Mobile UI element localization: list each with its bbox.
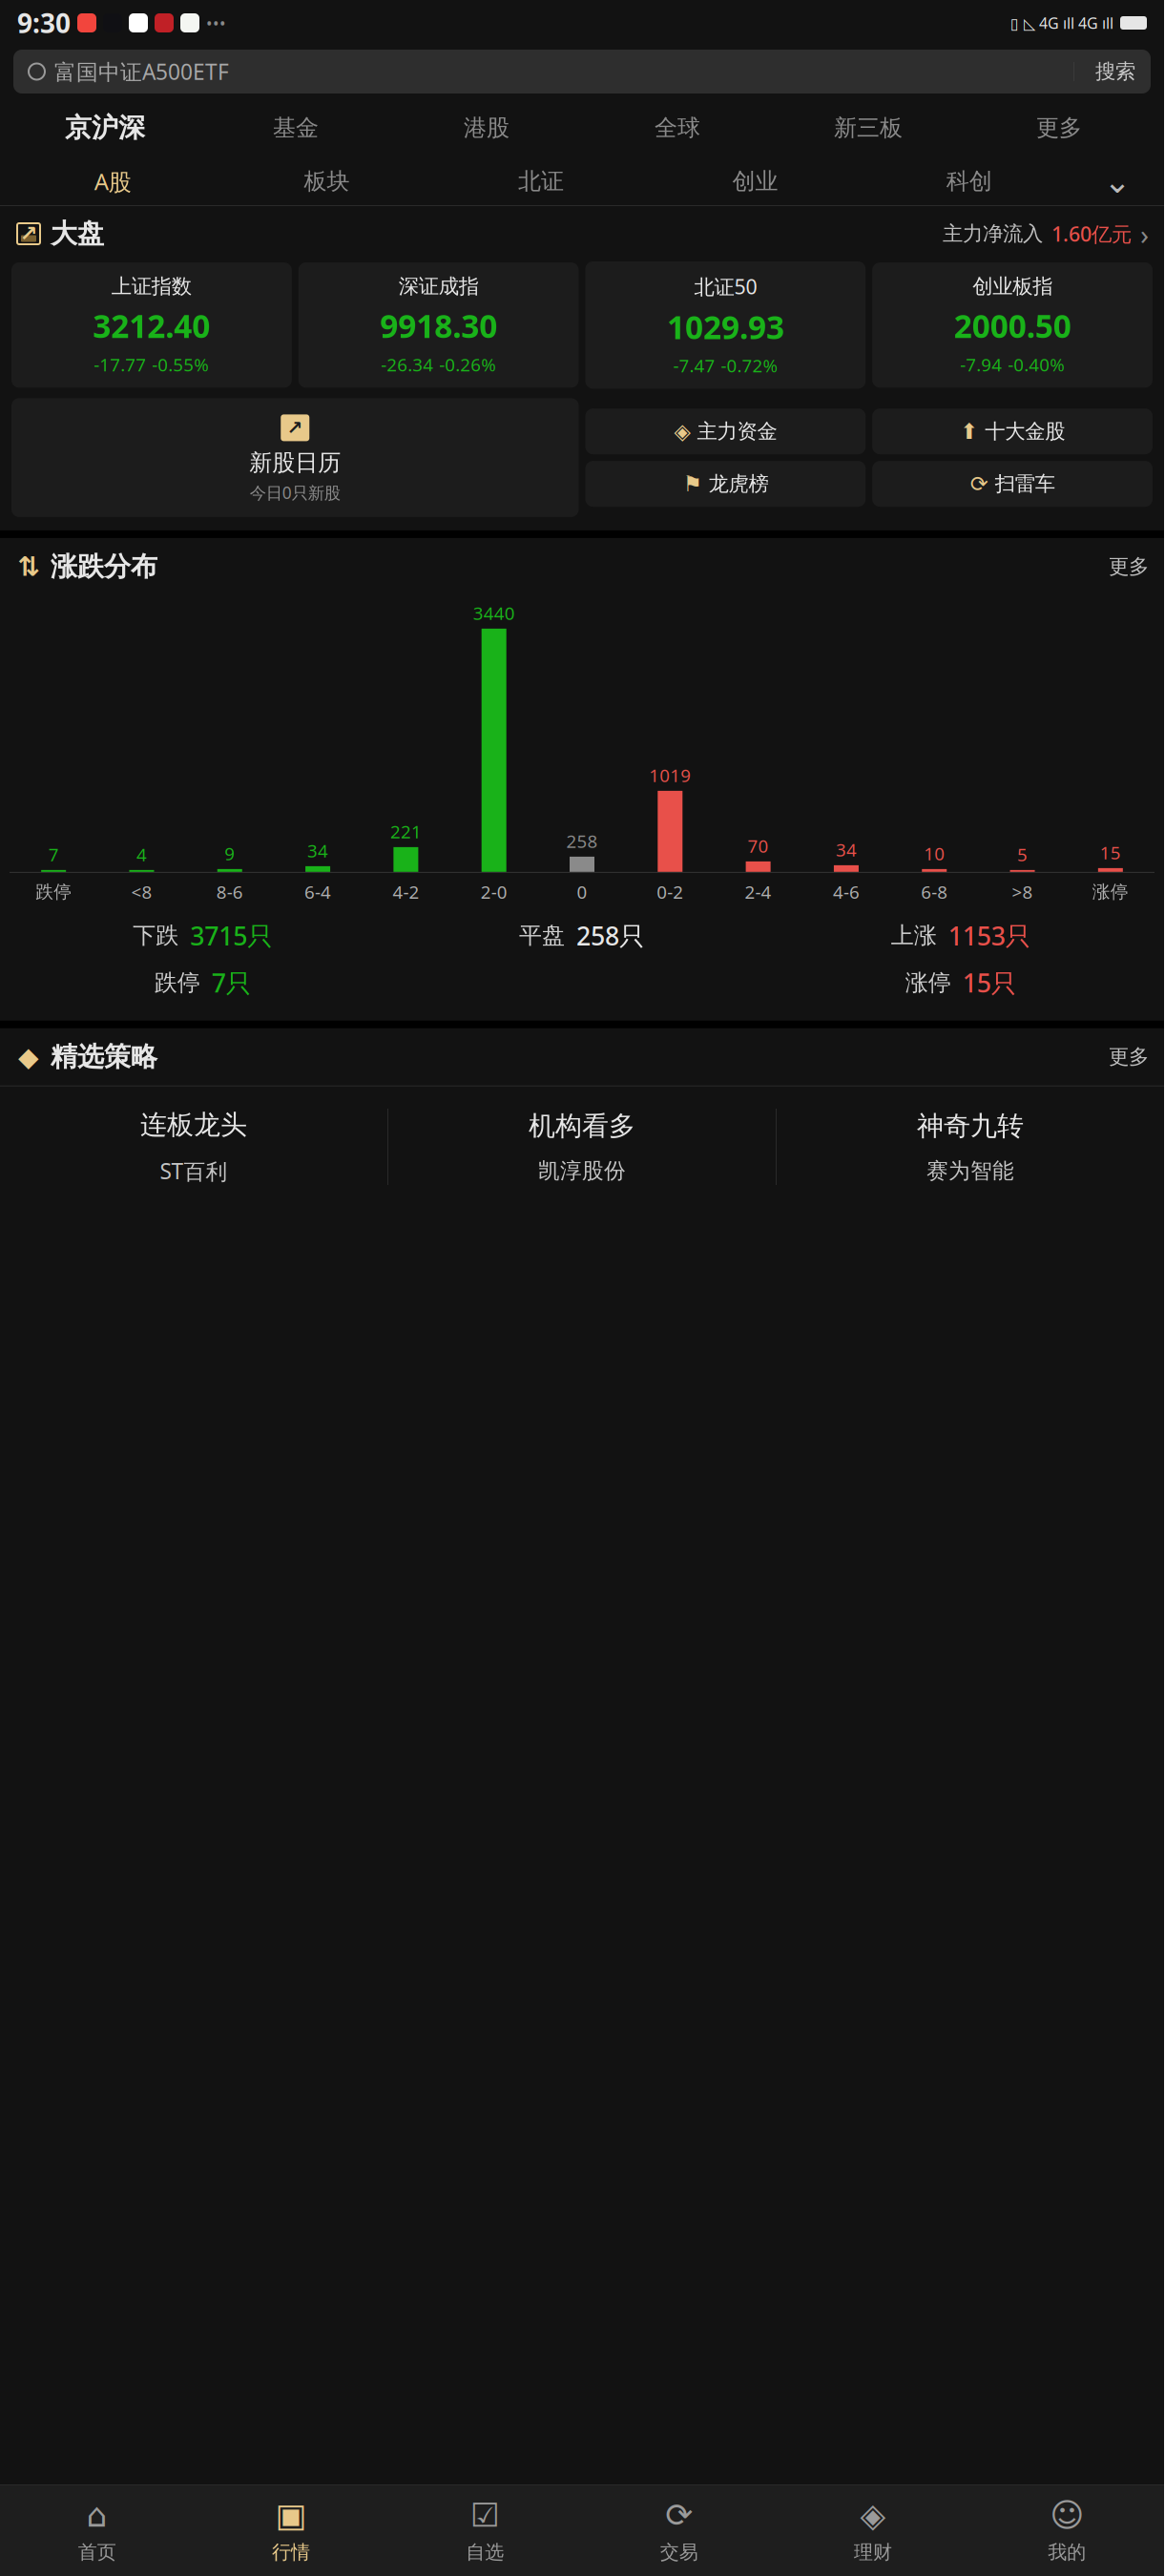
staticText: 大盘 (51, 217, 104, 250)
staticText: 4-6 (833, 880, 860, 904)
button[interactable]: 更多 (964, 107, 1155, 149)
button[interactable]: ☑ (388, 2484, 582, 2576)
staticText: 行情 (272, 2541, 310, 2564)
staticText: 258只 (576, 919, 645, 952)
staticText: 上涨 (891, 921, 937, 950)
staticText: -0.40% (1008, 353, 1065, 376)
staticText: ◈ (860, 2496, 886, 2534)
staticText: 70 (748, 834, 769, 858)
staticText: 2-0 (481, 880, 507, 904)
button[interactable]: 创业 (648, 158, 862, 204)
staticText: 北证 (518, 167, 564, 195)
staticText: 自选 (466, 2541, 504, 2564)
staticText: 连板龙头 (140, 1108, 247, 1141)
staticText: 赛为智能 (926, 1158, 1014, 1184)
staticText: 7只 (212, 966, 252, 1000)
button[interactable]: ⚑ (585, 461, 866, 507)
staticText: 搜索 (1095, 59, 1135, 84)
staticText: 理财 (854, 2541, 892, 2564)
staticText: ⚑ (683, 472, 702, 496)
staticText: 扫雷车 (995, 471, 1055, 496)
button[interactable]: ⌂ (0, 2484, 194, 2576)
staticText: ☑ (470, 2496, 500, 2534)
button[interactable]: 创业板指 (872, 262, 1153, 388)
button[interactable]: ◈ (585, 408, 866, 454)
staticText: 上证指数 (112, 274, 192, 299)
staticText: >8 (1012, 880, 1033, 904)
staticText: ST百利 (160, 1156, 228, 1185)
staticText: -26.34 (381, 353, 433, 376)
staticText: 34 (836, 838, 857, 861)
button[interactable]: 基金 (200, 107, 391, 149)
staticText: ▯ ◺ 4G ıll 4G ıll (1010, 13, 1113, 33)
button[interactable]: ⟳ (582, 2484, 776, 2576)
staticText: 精选策略 (51, 1040, 157, 1073)
button[interactable]: 富国中证A500ETF (0, 46, 1164, 107)
staticText: ↗ (287, 417, 303, 439)
button[interactable]: 全球 (582, 107, 773, 149)
button[interactable]: 深证成指 (298, 262, 579, 388)
staticText: 全球 (655, 114, 700, 142)
staticText: 4-2 (393, 880, 419, 904)
staticText: ◈ (674, 419, 690, 444)
staticText: 北证50 (694, 273, 757, 300)
staticText: 神奇九转 (917, 1109, 1024, 1142)
staticText: 首页 (78, 2541, 116, 2564)
staticText: 创业 (732, 167, 778, 195)
staticText: 涨跌分布 (51, 550, 157, 583)
button[interactable]: ◆ (0, 1028, 1164, 1085)
button[interactable]: ↗ (0, 206, 1164, 261)
staticText: 9918.30 (380, 305, 497, 347)
button[interactable]: ◈ (776, 2484, 970, 2576)
button[interactable]: 连板龙头 (0, 1091, 387, 1202)
button[interactable]: ↗ (11, 398, 579, 517)
staticText: 更多 (1036, 114, 1082, 142)
staticText: › (1140, 215, 1149, 252)
staticText: 下跌 (133, 921, 179, 950)
button[interactable]: 机构看多 (388, 1092, 776, 1201)
button[interactable]: 板块 (220, 158, 434, 204)
staticText: 我的 (1048, 2541, 1086, 2564)
staticText: 0-2 (657, 880, 683, 904)
staticText: 15只 (963, 966, 1017, 1000)
staticText: -7.47 (673, 354, 715, 377)
button[interactable]: 展开更多 (1076, 158, 1158, 204)
staticText: 4 (136, 843, 147, 866)
button[interactable]: ⇅ (0, 538, 1164, 595)
staticText: <8 (131, 880, 152, 904)
button[interactable]: 港股 (391, 107, 582, 149)
button[interactable]: 京沪深 (10, 107, 200, 149)
button[interactable]: 上证指数 (11, 262, 292, 388)
button[interactable]: A股 (6, 158, 220, 204)
staticText: ▣ (275, 2496, 307, 2534)
staticText: 6-4 (304, 880, 331, 904)
button[interactable]: ▣ (194, 2484, 388, 2576)
button[interactable]: 新三板 (773, 107, 964, 149)
staticText: 1019 (649, 763, 691, 787)
button[interactable]: 北证 (434, 158, 648, 204)
staticText: 机构看多 (529, 1109, 635, 1142)
staticText: 258 (566, 829, 598, 853)
button[interactable]: ⟳ (872, 461, 1153, 507)
staticText: 6-8 (921, 880, 948, 904)
staticText: 主力净流入 (943, 221, 1043, 246)
staticText: 新股日历 (249, 449, 341, 477)
staticText: 创业板指 (972, 274, 1053, 299)
button[interactable]: 神奇九转 (777, 1092, 1164, 1201)
staticText: -17.77 (94, 353, 146, 376)
staticText: 新三板 (834, 114, 903, 142)
staticText: 34 (307, 839, 328, 862)
staticText: 3212.40 (93, 305, 210, 347)
staticText: 2-4 (745, 880, 772, 904)
staticText: 深证成指 (398, 274, 479, 299)
button[interactable]: ☺ (970, 2484, 1164, 2576)
staticText: 3440 (473, 601, 515, 625)
button[interactable]: 科创 (862, 158, 1076, 204)
button[interactable]: 北证50 (585, 261, 866, 389)
staticText: 1153只 (948, 919, 1031, 952)
staticText: -0.55% (152, 353, 209, 376)
staticText: -0.72% (721, 354, 778, 377)
button[interactable]: ⬆ (872, 408, 1153, 454)
staticText: 涨停 (1092, 881, 1129, 903)
staticText: 10 (924, 842, 945, 865)
